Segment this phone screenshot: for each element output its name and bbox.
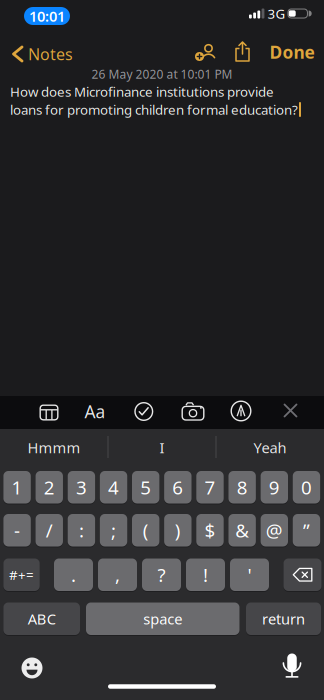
staticText: ;: [111, 518, 116, 543]
button[interactable]: Return to call: [24, 7, 70, 25]
button[interactable]: Done: [269, 40, 314, 63]
button[interactable]: space: [86, 602, 239, 635]
button[interactable]: #+=: [3, 558, 40, 591]
button[interactable]: Emoji: [18, 654, 46, 682]
staticText: .: [71, 562, 76, 587]
button[interactable]: return: [246, 602, 321, 635]
staticText: Hmmm: [27, 438, 80, 457]
button[interactable]: ': [230, 558, 269, 591]
staticText: -: [14, 518, 20, 543]
staticText: &: [235, 518, 249, 543]
staticText: ,: [115, 562, 120, 587]
staticText: ABC: [28, 609, 56, 628]
staticText: 3G: [267, 5, 285, 22]
staticText: 26 May 2020 at 10:01 PM: [91, 66, 232, 82]
staticText: ?: [157, 562, 165, 587]
button[interactable]: Dismiss keyboard: [283, 403, 298, 418]
button[interactable]: Insert table: [39, 404, 58, 420]
staticText: !: [203, 562, 208, 587]
staticText: Aa: [84, 400, 105, 423]
button[interactable]: $: [196, 514, 224, 546]
button[interactable]: ABC: [3, 602, 80, 635]
button[interactable]: Insert photo: [181, 402, 204, 421]
button[interactable]: ?: [142, 558, 181, 591]
button[interactable]: 5: [132, 471, 159, 503]
staticText: How does Microfinance institutions provi…: [10, 83, 274, 100]
button[interactable]: Formatting: [84, 400, 105, 423]
button[interactable]: Add people: [193, 43, 219, 63]
button[interactable]: :: [68, 514, 95, 546]
staticText: 8: [237, 475, 248, 500]
staticText: 1: [12, 475, 23, 500]
button[interactable]: Delete: [283, 558, 321, 591]
staticText: 0: [301, 475, 312, 500]
staticText: Yeah: [253, 438, 286, 457]
button[interactable]: 1: [3, 471, 31, 503]
button[interactable]: Dictate: [280, 652, 304, 679]
button[interactable]: (: [132, 514, 159, 546]
button[interactable]: 3: [68, 471, 95, 503]
staticText: return: [262, 609, 305, 628]
staticText: 3: [76, 475, 87, 500]
button[interactable]: &: [228, 514, 256, 546]
staticText: @: [266, 518, 283, 543]
button[interactable]: 9: [261, 471, 288, 503]
button[interactable]: I: [112, 430, 212, 464]
button[interactable]: Share: [234, 40, 251, 62]
staticText: I: [159, 438, 164, 457]
staticText: (: [143, 518, 149, 543]
button[interactable]: @: [261, 514, 288, 546]
button[interactable]: Hmmm: [4, 430, 104, 464]
staticText: 5: [140, 475, 151, 500]
staticText: 4: [108, 475, 119, 500]
button[interactable]: 2: [35, 471, 63, 503]
staticText: loans for promoting children formal educ…: [10, 101, 298, 118]
button[interactable]: .: [54, 558, 93, 591]
staticText: Notes: [28, 43, 73, 65]
button[interactable]: -: [3, 514, 31, 546]
staticText: space: [143, 609, 182, 628]
staticText: #+=: [9, 566, 34, 584]
staticText: ”: [303, 518, 310, 543]
button[interactable]: ”: [293, 514, 320, 546]
staticText: Done: [269, 40, 314, 63]
staticText: 6: [172, 475, 183, 500]
button[interactable]: ): [164, 514, 192, 546]
button[interactable]: 8: [228, 471, 256, 503]
staticText: :: [79, 518, 84, 543]
button[interactable]: Markup: [230, 400, 251, 421]
staticText: ': [247, 562, 251, 587]
staticText: $: [204, 518, 215, 543]
button[interactable]: Checklist: [134, 402, 153, 421]
staticText: /: [46, 518, 53, 543]
button[interactable]: ;: [100, 514, 127, 546]
button[interactable]: Back to Notes: [11, 43, 73, 65]
button[interactable]: !: [186, 558, 225, 591]
button[interactable]: 7: [196, 471, 224, 503]
button[interactable]: Yeah: [220, 430, 320, 464]
staticText: 7: [204, 475, 215, 500]
button[interactable]: 0: [293, 471, 320, 503]
staticText: 10:01: [29, 6, 65, 26]
button[interactable]: 6: [164, 471, 192, 503]
staticText: 9: [269, 475, 280, 500]
button[interactable]: /: [35, 514, 63, 546]
button[interactable]: 4: [100, 471, 127, 503]
staticText: 2: [44, 475, 55, 500]
staticText: ): [175, 518, 181, 543]
button[interactable]: ,: [98, 558, 137, 591]
